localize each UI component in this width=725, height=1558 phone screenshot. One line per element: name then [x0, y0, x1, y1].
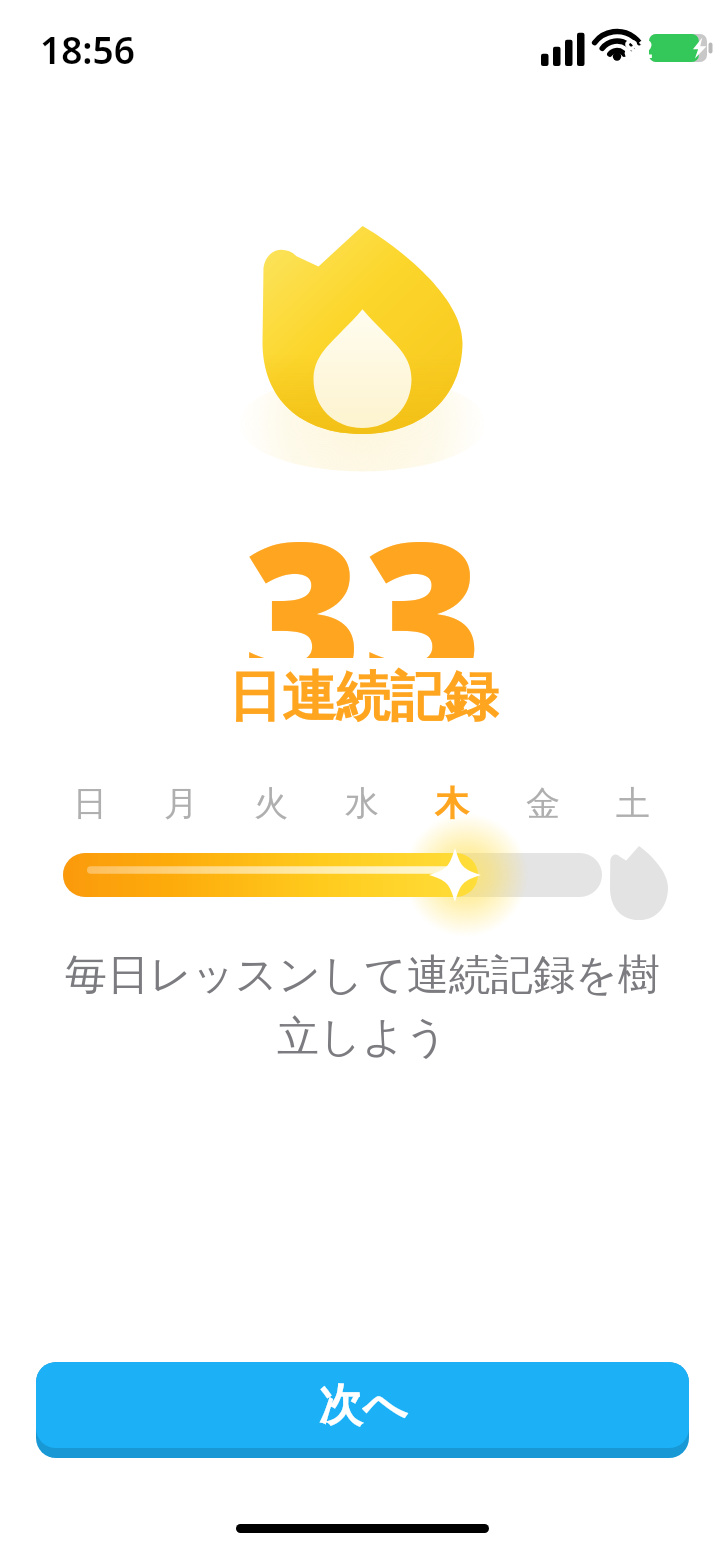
staticText: 木	[435, 782, 469, 825]
staticText: 月	[164, 782, 198, 825]
staticText: 土	[616, 782, 650, 825]
staticText: 18:56	[40, 24, 135, 74]
button[interactable]: 次へ	[36, 1362, 689, 1458]
staticText: 火	[254, 782, 288, 825]
staticText: 日	[73, 782, 107, 825]
staticText: 毎日レッスンして連続記録を樹立しよう	[56, 949, 669, 1064]
staticText: 82	[624, 31, 653, 65]
other: Home indicator	[236, 1524, 489, 1533]
staticText: 金	[526, 782, 560, 825]
staticText: 次へ	[318, 1378, 408, 1433]
staticText: 水	[345, 782, 379, 825]
staticText: 33	[242, 472, 483, 658]
staticText: 日連続記録	[228, 663, 498, 731]
